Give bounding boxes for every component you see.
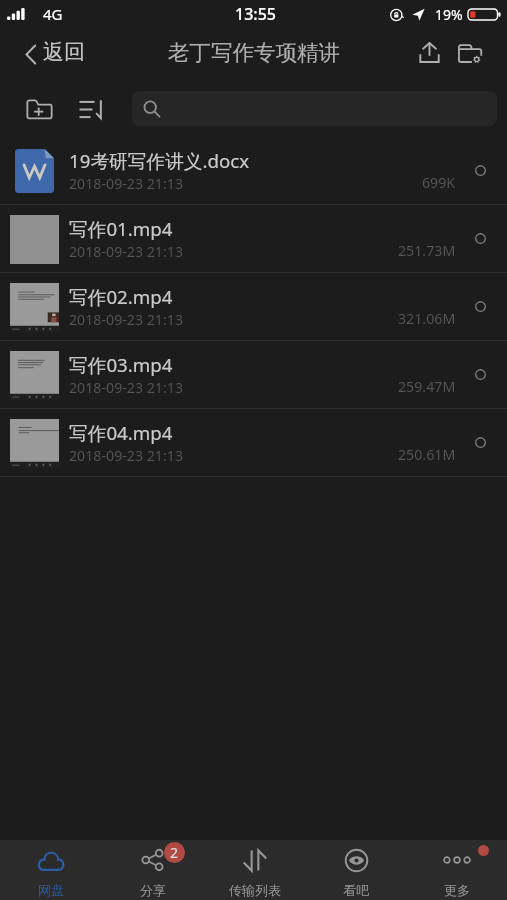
button[interactable]: Search: [132, 91, 497, 126]
staticText: 写作02.mp4: [69, 284, 173, 310]
staticText: 251.73M: [398, 241, 456, 260]
staticText: 返回: [43, 39, 85, 65]
button[interactable]: New folder: [19, 87, 59, 131]
staticText: 老丁写作专项精讲: [168, 39, 340, 66]
staticText: 2018-09-23 21:13: [69, 310, 184, 329]
button[interactable]: 写作03.mp4: [0, 341, 507, 409]
staticText: 699K: [422, 173, 456, 192]
staticText: 259.47M: [398, 377, 456, 396]
staticText: 321.06M: [398, 309, 456, 328]
button[interactable]: 更多: [406, 840, 507, 900]
staticText: 写作03.mp4: [69, 352, 173, 378]
staticText: 传输列表: [229, 882, 281, 898]
staticText: 写作01.mp4: [69, 216, 173, 242]
button[interactable]: 19考研写作讲义.docx: [0, 137, 507, 205]
button[interactable]: Select: [472, 162, 488, 178]
staticText: 更多: [444, 882, 470, 898]
staticText: 写作04.mp4: [69, 420, 173, 446]
button[interactable]: 传输列表: [204, 840, 305, 900]
button[interactable]: Select: [472, 298, 488, 314]
button[interactable]: 写作04.mp4: [0, 409, 507, 477]
staticText: 250.61M: [398, 445, 456, 464]
staticText: 网盘: [38, 882, 64, 898]
button[interactable]: 返回: [0, 28, 97, 80]
staticText: 2018-09-23 21:13: [69, 378, 184, 397]
button[interactable]: 2: [102, 840, 204, 900]
button[interactable]: Folder settings: [451, 28, 495, 80]
staticText: 2: [170, 843, 179, 862]
staticText: 2018-09-23 21:13: [69, 242, 184, 261]
button[interactable]: Upload: [407, 28, 451, 80]
button[interactable]: Sort: [75, 87, 109, 131]
button[interactable]: 看吧: [305, 840, 406, 900]
staticText: 分享: [140, 882, 166, 898]
staticText: 19考研写作讲义.docx: [69, 148, 250, 174]
button[interactable]: 写作02.mp4: [0, 273, 507, 341]
staticText: 看吧: [343, 882, 369, 898]
button[interactable]: 写作01.mp4: [0, 205, 507, 273]
staticText: 2018-09-23 21:13: [69, 446, 184, 465]
button[interactable]: 网盘: [0, 840, 102, 900]
staticText: 4G: [43, 4, 63, 24]
staticText: 2018-09-23 21:13: [69, 174, 184, 193]
button[interactable]: Select: [472, 434, 488, 450]
staticText: 19%: [435, 5, 463, 24]
staticText: 13:55: [235, 3, 276, 25]
button[interactable]: Select: [472, 366, 488, 382]
button[interactable]: Select: [472, 230, 488, 246]
